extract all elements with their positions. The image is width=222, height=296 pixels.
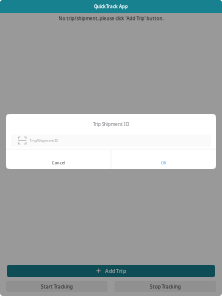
button[interactable]: Start Tracking [6,281,107,292]
staticText: Trip Shipment ID [93,121,129,127]
button[interactable]: Cancel [6,149,111,169]
staticText: No trip/shipment, please click 'Add Trip… [58,15,163,22]
staticText: QuickTrack App [94,3,128,9]
staticText: Trip/Shipment ID [29,138,58,143]
staticText: Stop Tracking [150,283,181,290]
button[interactable]: Stop Tracking [114,281,216,292]
staticText: Cancel [52,160,65,165]
staticText: OK [161,160,167,165]
button[interactable]: Add Trip [7,265,215,277]
staticText: Start Tracking [41,283,73,290]
staticText: Add Trip [105,267,126,274]
button[interactable]: OK [111,149,216,169]
